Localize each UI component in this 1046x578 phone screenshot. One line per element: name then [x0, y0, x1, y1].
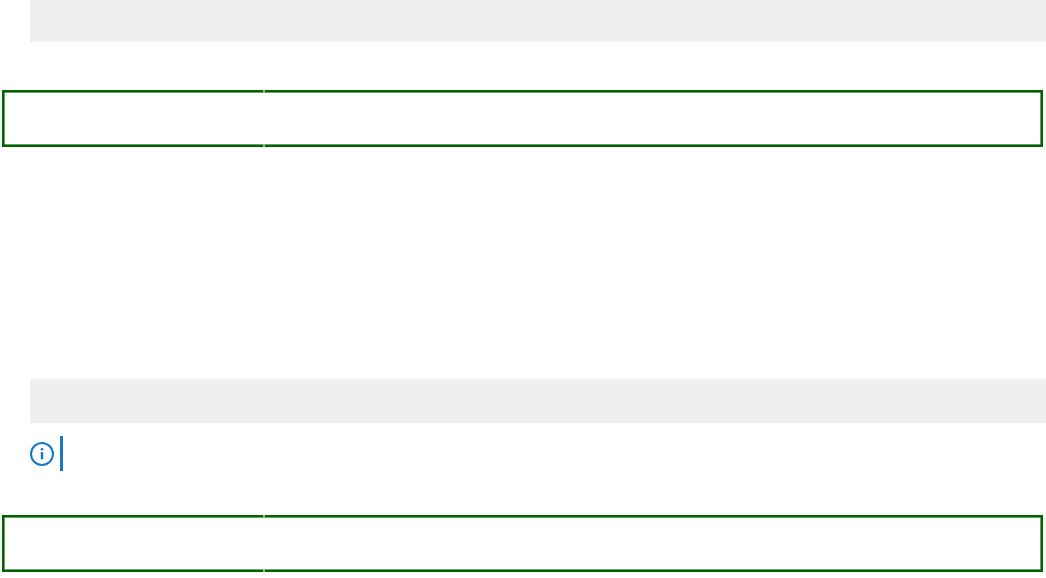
button[interactable] [2, 515, 1043, 572]
button[interactable]: Information [30, 442, 54, 466]
button[interactable] [2, 90, 1043, 147]
